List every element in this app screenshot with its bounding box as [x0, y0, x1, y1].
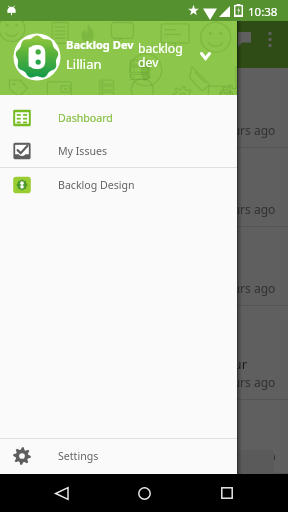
button[interactable]: Comments	[228, 23, 260, 55]
staticText: Lillian closed an issue about the build …	[14, 317, 248, 373]
button[interactable]: Back	[39, 474, 83, 512]
button[interactable]: New release candidate is now ready for t…	[0, 400, 288, 474]
staticText: Ryota commented on the design review tic…	[14, 159, 213, 196]
staticText: 2 hours ago	[208, 122, 276, 138]
button[interactable]: My Issues	[0, 134, 237, 167]
staticText: 10:38	[248, 4, 278, 20]
staticText: 8 hours ago	[208, 374, 276, 390]
button[interactable]: Settings	[0, 439, 237, 472]
staticText: Settings	[58, 449, 99, 463]
staticText: dev	[138, 54, 159, 71]
button[interactable]: Home	[122, 474, 166, 512]
button[interactable]: Recents	[205, 474, 249, 512]
staticText: Design update will be shipped tonight	[27, 460, 159, 496]
staticText: My Issues	[58, 144, 108, 158]
button[interactable]: Switch account	[193, 43, 218, 68]
staticText: 3 hours ago	[208, 201, 276, 217]
staticText: 5 hours ago	[208, 280, 276, 296]
staticText: backlog	[138, 40, 183, 57]
button[interactable]: Ryota commented on the design review tic…	[0, 148, 288, 227]
button[interactable]: Lillian updated the status of the issue …	[0, 68, 288, 148]
button[interactable]: Open navigation drawer	[4, 21, 48, 65]
button[interactable]: Dashboard	[0, 101, 237, 134]
staticText: Dashboard	[58, 111, 113, 125]
button[interactable]: Design update will be shipped tonight	[14, 450, 274, 512]
staticText: Backlog Design	[58, 178, 135, 192]
button[interactable]: Tanaka added a new pull request to the m…	[0, 227, 288, 306]
button[interactable]: Backlog Design	[0, 168, 237, 201]
staticText: New release candidate is now ready for t…	[14, 411, 238, 448]
staticText: Lillian	[66, 55, 102, 73]
staticText: 1 day ago	[221, 448, 276, 464]
staticText: Backlog Dev	[66, 37, 134, 52]
staticText: Lillian updated the status of the issue …	[14, 79, 184, 116]
button[interactable]: Lillian closed an issue about the build …	[0, 306, 288, 400]
button[interactable]: More options	[254, 23, 286, 55]
staticText: Dashboard	[57, 34, 141, 56]
